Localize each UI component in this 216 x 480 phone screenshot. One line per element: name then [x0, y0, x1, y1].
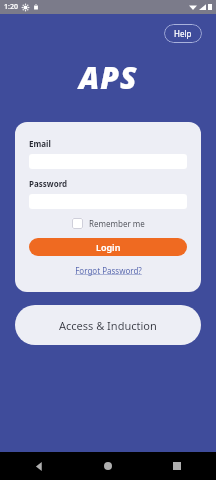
staticText: Password — [29, 178, 68, 189]
staticText: Help — [174, 28, 192, 39]
button[interactable]: Home — [99, 457, 117, 475]
button[interactable]: Login — [29, 238, 187, 256]
staticText: Login — [96, 241, 121, 253]
staticText: 1:20 — [4, 2, 18, 12]
staticText: Email — [29, 138, 51, 149]
button[interactable]: Back — [30, 457, 48, 475]
button[interactable]: Access & Induction — [15, 305, 201, 345]
staticText: Access & Induction — [59, 318, 157, 333]
button[interactable]: Help — [164, 24, 202, 43]
button[interactable]: Remember me — [29, 218, 187, 229]
button[interactable]: Recent apps — [168, 457, 186, 475]
button[interactable]: Forgot Password? — [75, 265, 142, 276]
staticText: Remember me — [89, 218, 145, 229]
staticText: APS — [79, 57, 138, 98]
